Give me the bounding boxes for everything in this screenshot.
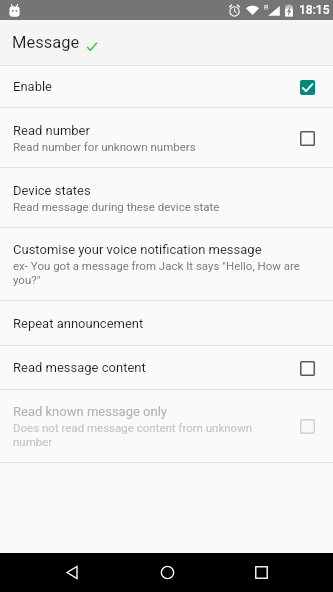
button[interactable]: Enable <box>0 66 333 107</box>
staticText: Repeat announcement <box>13 316 144 331</box>
staticText: Message <box>12 33 80 52</box>
button[interactable]: Customise your voice notification messag… <box>0 228 333 300</box>
staticText: Read message during these device state <box>13 200 220 213</box>
staticText: Read message content <box>13 360 146 375</box>
staticText: Enable <box>13 79 52 94</box>
staticText: Read number for unknown numbers <box>13 140 196 153</box>
button[interactable]: Recent apps <box>238 553 284 592</box>
staticText: Read number <box>13 123 90 138</box>
button[interactable]: Toggle setting <box>296 357 318 379</box>
staticText: Read known message only <box>13 404 167 419</box>
staticText: Customise your voice notification messag… <box>13 242 262 257</box>
staticText: Device states <box>13 183 91 198</box>
button[interactable]: Device states <box>0 168 333 227</box>
staticText: 18:15 <box>299 3 330 17</box>
button[interactable]: Read message content <box>0 346 333 389</box>
button[interactable]: Toggle setting <box>296 127 318 149</box>
staticText: ex- You got a message from Jack It says … <box>13 259 318 287</box>
button[interactable]: Home <box>144 553 190 592</box>
button[interactable]: Read number <box>0 108 333 167</box>
button[interactable]: Toggle setting <box>296 415 318 437</box>
button[interactable]: Repeat announcement <box>0 301 333 345</box>
button[interactable]: Back <box>49 553 95 592</box>
button[interactable]: Read known message only <box>0 390 333 462</box>
staticText: Does not read message content from unkno… <box>13 421 286 449</box>
button[interactable]: Toggle setting <box>296 76 318 98</box>
